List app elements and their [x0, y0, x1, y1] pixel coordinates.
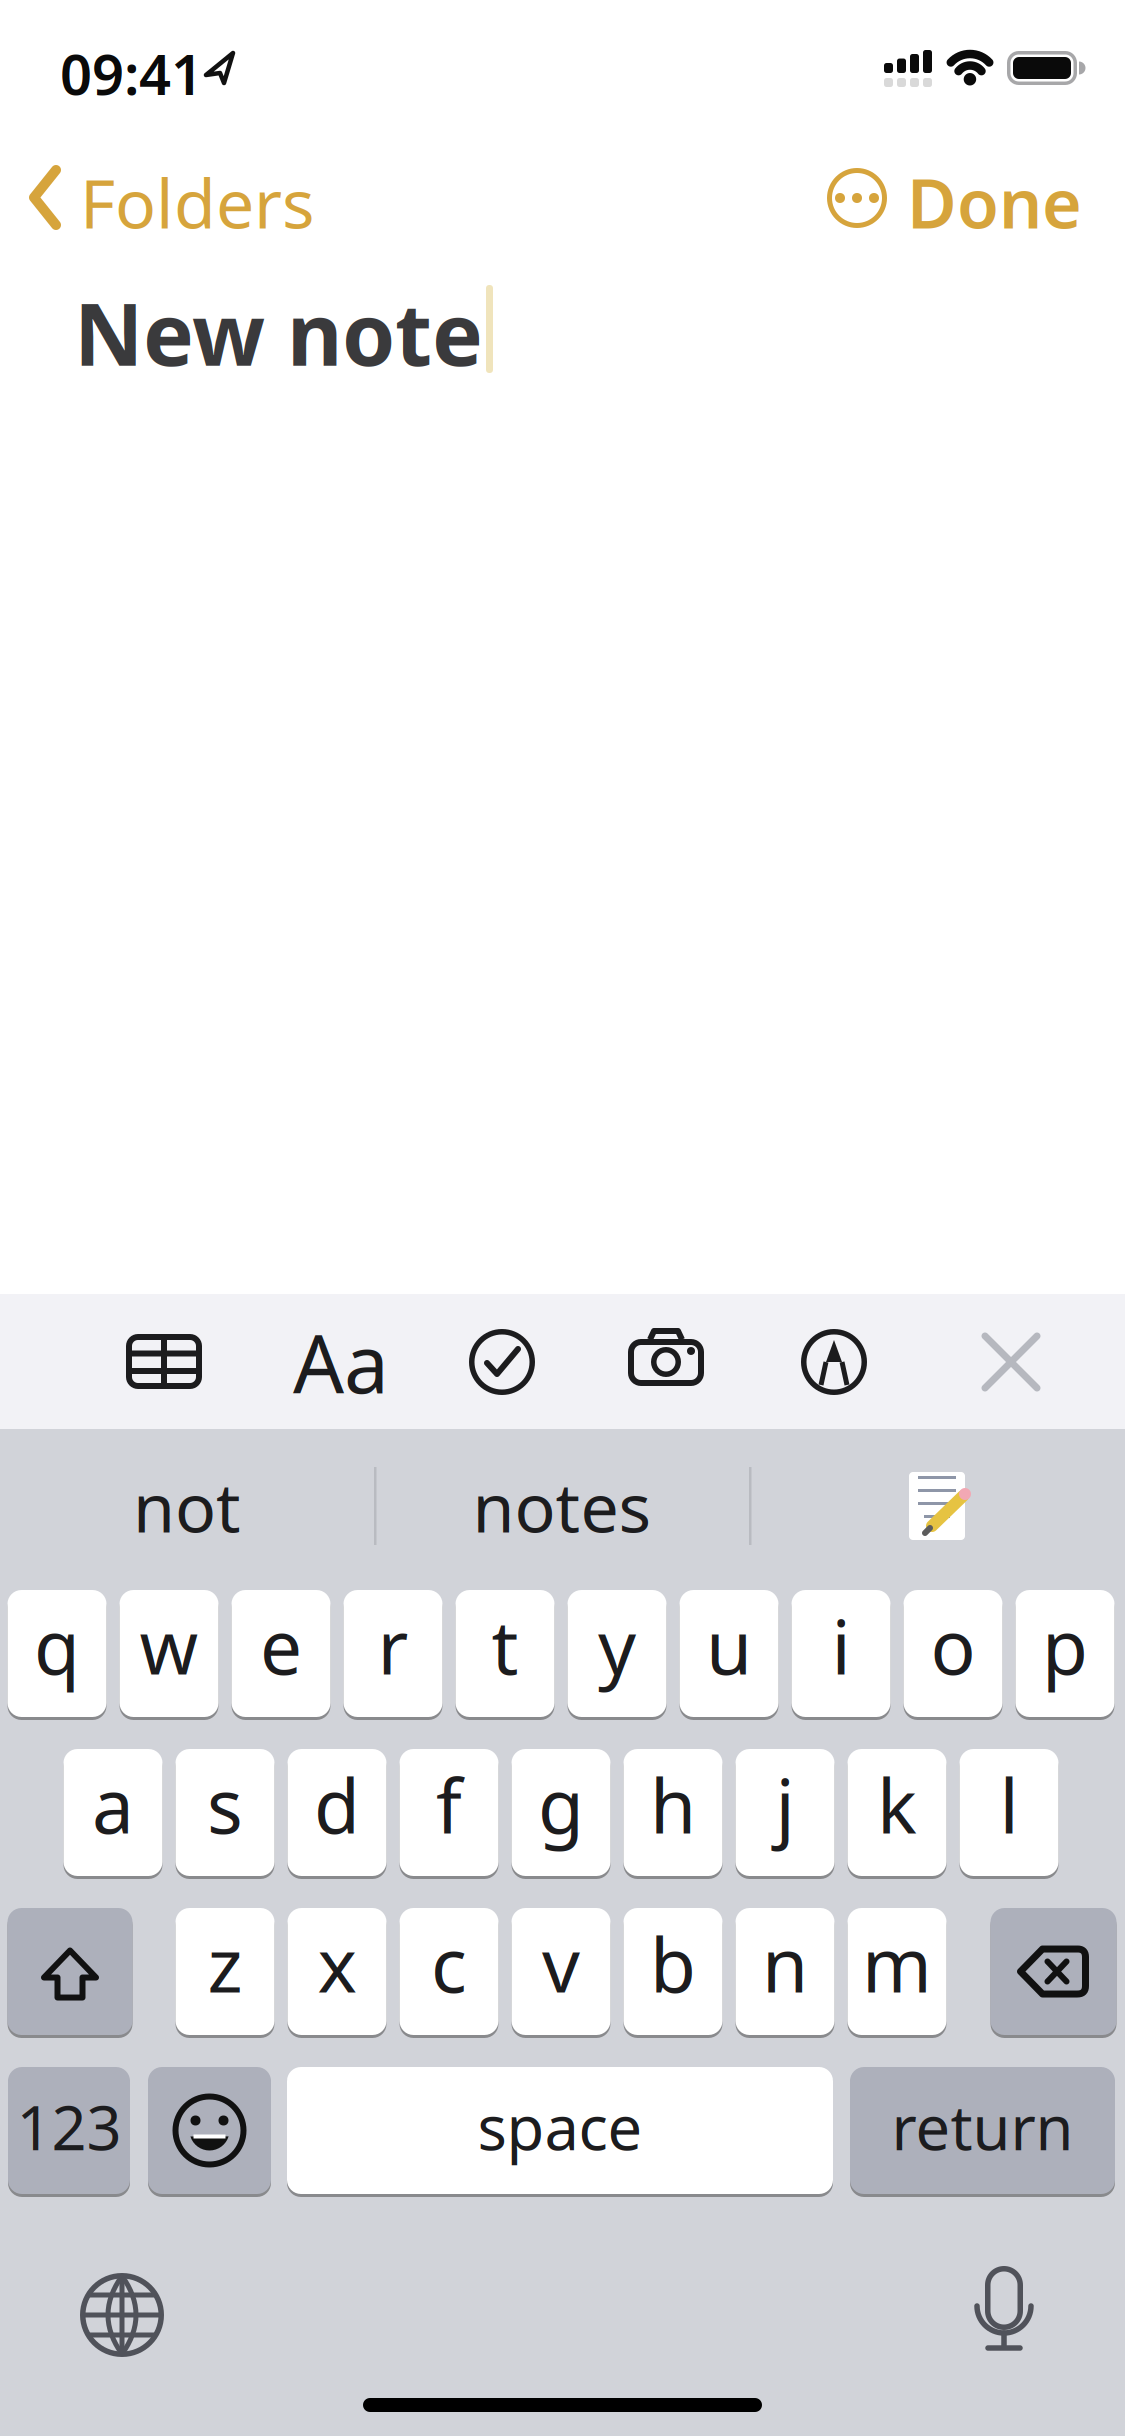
staticText: g	[538, 1755, 584, 1854]
button[interactable]: Checklist	[469, 1329, 535, 1395]
button[interactable]: Done	[907, 157, 1082, 247]
staticText: r	[377, 1596, 408, 1695]
staticText: 123	[16, 2086, 121, 2167]
button[interactable]: return	[850, 2067, 1115, 2194]
button[interactable]: m	[847, 1908, 946, 2035]
staticText: 09:41	[60, 36, 203, 110]
staticText: space	[477, 2086, 642, 2167]
button[interactable]: i	[791, 1590, 890, 1717]
button[interactable]: g	[511, 1749, 610, 1876]
button[interactable]: o	[903, 1590, 1002, 1717]
staticText: z	[207, 1914, 242, 2013]
button[interactable]: More	[827, 168, 887, 228]
button[interactable]: n	[735, 1908, 834, 2035]
staticText: y	[598, 1596, 636, 1695]
staticText: return	[891, 2086, 1073, 2167]
staticText: Done	[907, 157, 1082, 247]
button[interactable]: v	[511, 1908, 610, 2035]
staticText: u	[706, 1596, 752, 1695]
staticText: a	[92, 1755, 134, 1854]
button[interactable]: 123	[8, 2067, 130, 2194]
staticText: h	[650, 1755, 696, 1854]
button[interactable]: b	[623, 1908, 722, 2035]
button[interactable]: Next keyboard	[80, 2273, 164, 2357]
staticText: p	[1042, 1596, 1088, 1695]
button[interactable]: Dismiss keyboard	[983, 1334, 1039, 1390]
staticText: m	[862, 1914, 932, 2013]
staticText: not	[133, 1461, 241, 1551]
button[interactable]: r	[343, 1590, 442, 1717]
button[interactable]: e	[231, 1590, 330, 1717]
button[interactable]: l	[959, 1749, 1058, 1876]
staticText: n	[762, 1914, 808, 2013]
button[interactable]: Back	[0, 0, 270, 100]
staticText: New note	[74, 276, 483, 389]
button[interactable]: d	[287, 1749, 386, 1876]
button[interactable]: p	[1015, 1590, 1114, 1717]
staticText: v	[542, 1914, 580, 2013]
button[interactable]: u	[679, 1590, 778, 1717]
button[interactable]: y	[567, 1590, 666, 1717]
button[interactable]: space	[287, 2067, 833, 2194]
staticText: o	[930, 1596, 975, 1695]
staticText: c	[431, 1914, 467, 2013]
button[interactable]: Markup	[801, 1329, 867, 1395]
button[interactable]: not	[22, 1451, 352, 1561]
button[interactable]: w	[119, 1590, 218, 1717]
staticText: q	[34, 1596, 80, 1695]
button[interactable]: s	[175, 1749, 274, 1876]
staticText: i	[831, 1596, 850, 1695]
button[interactable]: Emoji	[148, 2067, 271, 2194]
button[interactable]: f	[399, 1749, 498, 1876]
button[interactable]: q	[7, 1590, 106, 1717]
button[interactable]: j	[735, 1749, 834, 1876]
staticText: w	[139, 1596, 198, 1695]
staticText: l	[999, 1755, 1018, 1854]
staticText: Aa	[293, 1309, 389, 1415]
button[interactable]: Delete	[990, 1908, 1116, 2035]
button[interactable]: x	[287, 1908, 386, 2035]
button[interactable]: h	[623, 1749, 722, 1876]
button[interactable]: z	[175, 1908, 274, 2035]
button[interactable]: notes emoji	[772, 1451, 1102, 1561]
button[interactable]: notes	[397, 1451, 727, 1561]
staticText: b	[650, 1914, 696, 2013]
staticText: Folders	[80, 157, 315, 247]
staticText: t	[491, 1596, 518, 1695]
staticText: s	[207, 1755, 243, 1854]
staticText: k	[877, 1755, 917, 1854]
button[interactable]: Insert photo	[626, 1327, 706, 1389]
button[interactable]: Insert table	[126, 1334, 202, 1389]
staticText: d	[314, 1755, 360, 1854]
button[interactable]: a	[63, 1749, 162, 1876]
staticText: notes	[472, 1461, 651, 1551]
button[interactable]: c	[399, 1908, 498, 2035]
staticText: f	[436, 1755, 462, 1854]
staticText: j	[775, 1755, 794, 1854]
button[interactable]: Shift	[7, 1908, 132, 2035]
button[interactable]: t	[455, 1590, 554, 1717]
button[interactable]: Dictate	[964, 2266, 1044, 2356]
button[interactable]: Format	[293, 1309, 389, 1415]
button[interactable]: k	[847, 1749, 946, 1876]
staticText: e	[260, 1596, 302, 1695]
staticText: x	[317, 1914, 356, 2013]
